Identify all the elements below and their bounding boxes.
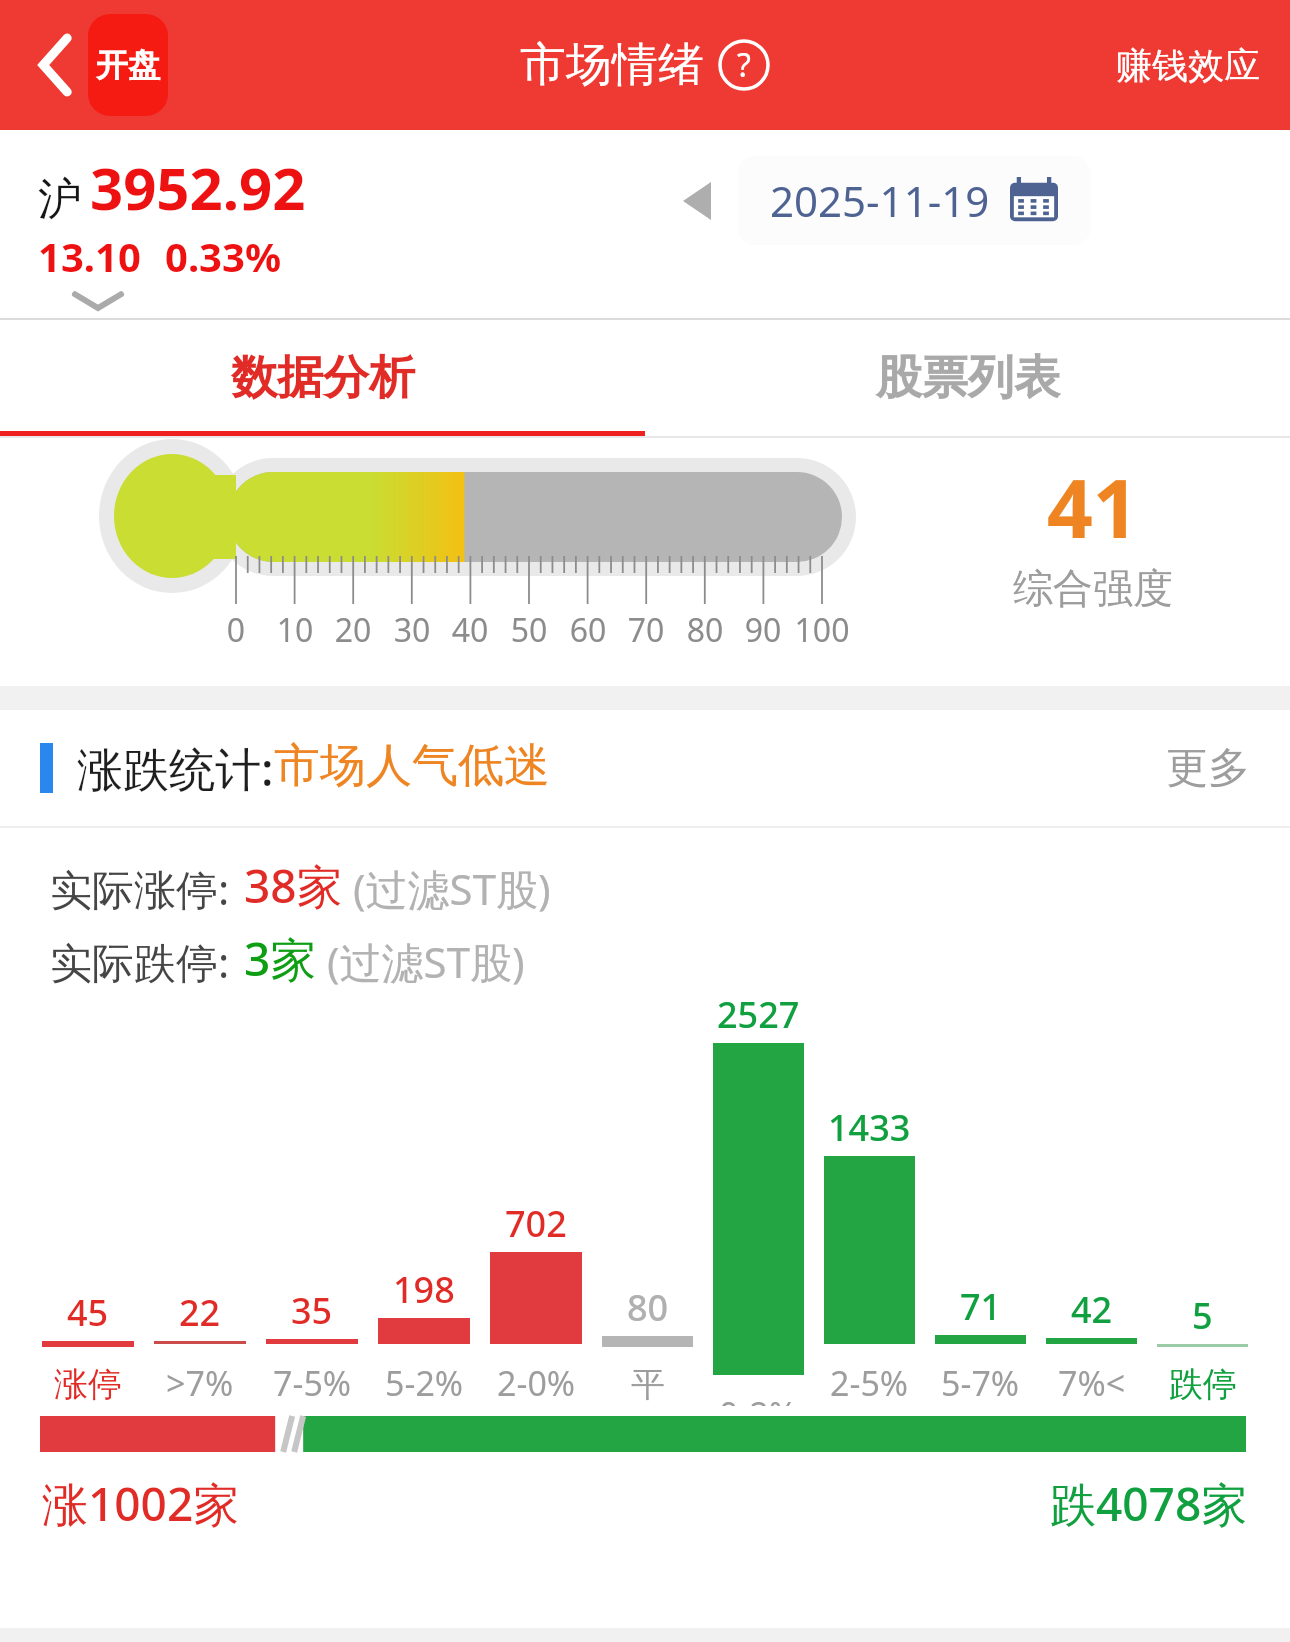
staticText: 702 [505, 1199, 567, 1248]
staticText: 0 [206, 608, 266, 652]
staticText: 2527 [717, 990, 800, 1039]
staticText: 综合强度 [1013, 563, 1173, 613]
staticText: ? [737, 43, 751, 87]
staticText: 7-5% [273, 1360, 352, 1406]
staticText: >7% [166, 1360, 234, 1406]
button[interactable]: 更多 [1166, 742, 1250, 795]
button[interactable]: Back [28, 25, 84, 105]
staticText: 100 [792, 608, 852, 652]
staticText: 7%< [1058, 1360, 1126, 1406]
staticText: 5 [1192, 1291, 1213, 1340]
staticText: 3952.92 [90, 148, 306, 227]
staticText: 2-5% [830, 1360, 909, 1406]
staticText: 80 [675, 608, 735, 652]
staticText: 30 [382, 608, 442, 652]
staticText: 42 [1071, 1285, 1113, 1334]
staticText: 20 [323, 608, 383, 652]
staticText: 50 [499, 608, 559, 652]
staticText: (过滤ST股) [327, 933, 525, 990]
button[interactable]: 开盘 [88, 14, 168, 116]
staticText: 赚钱效应 [1116, 43, 1260, 88]
button[interactable]: Previous day [666, 170, 728, 232]
staticText: 45 [67, 1288, 109, 1337]
staticText: 5-2% [385, 1360, 464, 1406]
staticText: 198 [393, 1265, 455, 1314]
staticText: 40 [440, 608, 500, 652]
staticText: 沪 [38, 172, 82, 227]
staticText: 22 [179, 1288, 221, 1337]
staticText: 38家 [244, 854, 343, 917]
staticText: 2025-11-19 [770, 172, 990, 229]
staticText: 41 [1047, 452, 1139, 561]
staticText: 涨停 [54, 1363, 122, 1406]
staticText: (过滤ST股) [353, 860, 551, 917]
button[interactable]: 数据分析 [0, 320, 645, 436]
button[interactable]: 涨跌统计: [77, 737, 550, 800]
staticText: 数据分析 [231, 349, 415, 407]
button[interactable]: 股票列表 [645, 320, 1290, 436]
button[interactable]: 赚钱效应 [1116, 43, 1260, 88]
staticText: 3家 [244, 927, 317, 990]
staticText: 实际跌停: [50, 933, 230, 990]
staticText: 0.33% [165, 229, 281, 283]
staticText: 更多 [1166, 742, 1250, 795]
staticText: 80 [627, 1283, 669, 1332]
staticText: 60 [558, 608, 618, 652]
button[interactable]: 市场情绪 [520, 36, 770, 94]
staticText: 跌停 [1169, 1363, 1237, 1406]
staticText: 平 [631, 1363, 665, 1406]
staticText: 实际涨停: [50, 860, 230, 917]
staticText: 涨跌统计: [77, 737, 274, 800]
staticText: 90 [733, 608, 793, 652]
staticText: 71 [960, 1282, 1002, 1331]
staticText: 市场人气低迷 [274, 737, 550, 795]
staticText: 0-2% [719, 1391, 798, 1406]
staticText: 35 [291, 1286, 333, 1335]
staticText: 5-7% [941, 1360, 1020, 1406]
staticText: 股票列表 [876, 349, 1060, 407]
button[interactable]: 2025-11-19 [738, 156, 1090, 245]
staticText: 10 [265, 608, 325, 652]
staticText: 13.10 [38, 229, 141, 283]
staticText: 2-0% [497, 1360, 576, 1406]
staticText: 市场情绪 [520, 36, 704, 94]
staticText: 涨1002家 [42, 1472, 240, 1535]
staticText: 跌4078家 [1050, 1472, 1248, 1535]
staticText: 开盘 [96, 45, 160, 85]
staticText: 1433 [828, 1103, 911, 1152]
button[interactable]: Expand [62, 285, 134, 318]
staticText: 70 [616, 608, 676, 652]
